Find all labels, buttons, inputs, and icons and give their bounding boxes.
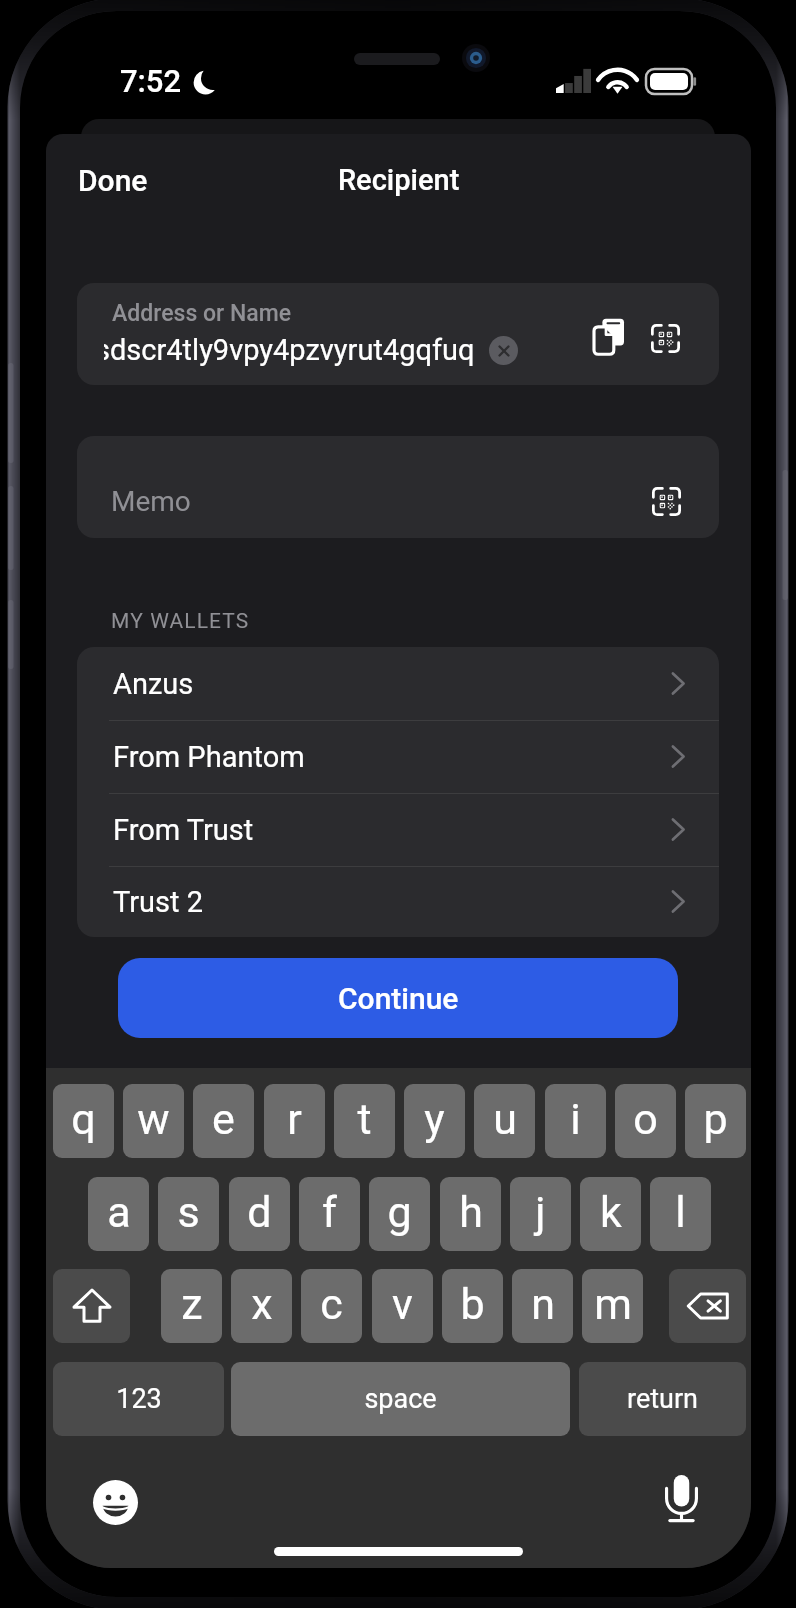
button[interactable]: d xyxy=(229,1177,290,1251)
staticText: o xyxy=(633,1094,658,1144)
staticText: d xyxy=(247,1187,272,1237)
staticText: Done xyxy=(78,163,148,198)
button[interactable]: j xyxy=(510,1177,571,1251)
button[interactable]: k xyxy=(580,1177,641,1251)
staticText: Recipient xyxy=(338,163,460,197)
staticText: From Phantom xyxy=(113,740,305,774)
button[interactable]: c xyxy=(301,1269,362,1343)
button[interactable]: return xyxy=(579,1362,746,1436)
button[interactable]: h xyxy=(440,1177,501,1251)
staticText: v xyxy=(392,1279,413,1329)
staticText: Trust 2 xyxy=(113,885,204,919)
staticText: Memo xyxy=(111,485,191,518)
staticText: p xyxy=(703,1094,728,1144)
button[interactable]: v xyxy=(372,1269,433,1343)
button[interactable]: t xyxy=(334,1084,395,1158)
staticText: Continue xyxy=(338,981,459,1016)
staticText: sdscr4tly9vpy4pzvyrut4gqfuq xyxy=(104,333,475,367)
button[interactable]: Continue xyxy=(118,958,678,1038)
button[interactable]: g xyxy=(369,1177,430,1251)
button[interactable]: Clear text xyxy=(489,336,518,365)
button[interactable]: l xyxy=(650,1177,711,1251)
staticText: a xyxy=(107,1187,131,1237)
staticText: 7:52 xyxy=(120,63,182,99)
staticText: f xyxy=(322,1187,337,1237)
button[interactable]: b xyxy=(442,1269,503,1343)
staticText: r xyxy=(287,1094,302,1144)
staticText: m xyxy=(594,1279,632,1329)
staticText: k xyxy=(600,1187,622,1237)
staticText: l xyxy=(675,1187,686,1237)
button[interactable]: 123 xyxy=(53,1362,224,1436)
button[interactable]: n xyxy=(512,1269,573,1343)
staticText: z xyxy=(181,1279,203,1329)
button[interactable]: m xyxy=(582,1269,643,1343)
button[interactable]: i xyxy=(545,1084,606,1158)
button[interactable]: a xyxy=(88,1177,149,1251)
staticText: i xyxy=(570,1094,581,1144)
button[interactable]: r xyxy=(264,1084,325,1158)
button[interactable]: Backspace xyxy=(669,1269,746,1343)
button[interactable]: Dictation xyxy=(654,1472,708,1526)
staticText: Anzus xyxy=(113,667,194,701)
button[interactable]: y xyxy=(404,1084,465,1158)
staticText: c xyxy=(320,1279,343,1329)
button[interactable]: u xyxy=(474,1084,535,1158)
staticText: w xyxy=(137,1094,170,1144)
staticText: Address or Name xyxy=(112,300,292,327)
staticText: b xyxy=(460,1279,485,1329)
staticText: t xyxy=(357,1094,372,1144)
button[interactable]: Trust 2 xyxy=(77,866,719,937)
staticText: x xyxy=(251,1279,273,1329)
button[interactable]: Shift xyxy=(53,1269,130,1343)
button[interactable]: f xyxy=(299,1177,360,1251)
staticText: MY WALLETS xyxy=(111,609,250,634)
staticText: g xyxy=(387,1187,412,1237)
button[interactable]: s xyxy=(158,1177,219,1251)
button[interactable]: space xyxy=(231,1362,570,1436)
button[interactable]: Paste xyxy=(581,308,637,364)
staticText: return xyxy=(627,1383,698,1415)
button[interactable]: Scan QR code xyxy=(638,473,694,529)
staticText: s xyxy=(177,1187,200,1237)
button[interactable]: Memo xyxy=(77,436,719,538)
button[interactable]: e xyxy=(193,1084,254,1158)
button[interactable]: Done xyxy=(64,149,162,212)
staticText: From Trust xyxy=(113,813,254,847)
button[interactable]: x xyxy=(231,1269,292,1343)
button[interactable]: w xyxy=(123,1084,184,1158)
button[interactable]: z xyxy=(161,1269,222,1343)
staticText: u xyxy=(493,1094,517,1144)
staticText: e xyxy=(212,1094,235,1144)
button[interactable]: From Phantom xyxy=(77,720,719,793)
button[interactable]: Emoji keyboard xyxy=(88,1475,142,1529)
button[interactable]: p xyxy=(685,1084,746,1158)
button[interactable]: q xyxy=(53,1084,114,1158)
staticText: y xyxy=(424,1094,445,1144)
staticText: 123 xyxy=(116,1383,162,1415)
button[interactable]: From Trust xyxy=(77,793,719,866)
staticText: space xyxy=(364,1383,437,1415)
button[interactable]: o xyxy=(615,1084,676,1158)
button[interactable]: Scan QR code xyxy=(637,310,693,366)
button[interactable]: Address or Name xyxy=(77,283,719,385)
button[interactable]: Anzus xyxy=(77,647,719,720)
staticText: j xyxy=(535,1187,546,1237)
staticText: h xyxy=(459,1187,483,1237)
staticText: n xyxy=(531,1279,555,1329)
staticText: q xyxy=(71,1094,96,1144)
